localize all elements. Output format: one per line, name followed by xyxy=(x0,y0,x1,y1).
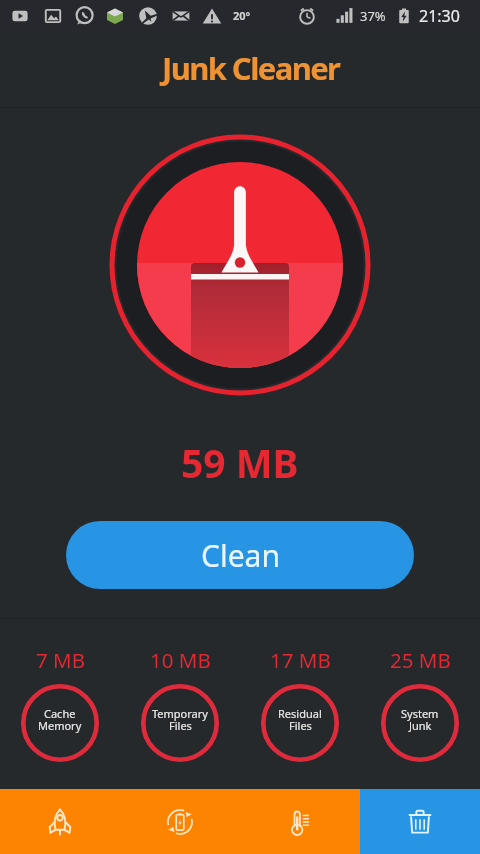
staticText: 37% xyxy=(360,7,386,25)
staticText: Files xyxy=(169,718,192,733)
staticText: Files xyxy=(289,718,312,733)
staticText: 10 MB xyxy=(150,646,211,674)
button[interactable]: 10 MB xyxy=(120,646,240,762)
staticText: Junk Cleaner xyxy=(162,47,340,89)
staticText: 59 MB xyxy=(181,436,299,489)
staticText: 7 MB xyxy=(36,646,85,674)
button[interactable]: CPU cooler xyxy=(240,789,360,854)
button[interactable]: Clean xyxy=(66,521,414,589)
staticText: Temporary xyxy=(152,706,208,721)
button[interactable]: Battery saver xyxy=(120,789,240,854)
staticText: Junk xyxy=(409,718,432,733)
staticText: 21:30 xyxy=(419,5,460,27)
staticText: Clean xyxy=(201,535,280,576)
button[interactable]: 17 MB xyxy=(240,646,360,762)
staticText: 17 MB xyxy=(270,646,331,674)
staticText: 20° xyxy=(233,8,251,23)
staticText: Cache xyxy=(44,706,76,721)
button[interactable]: Boost xyxy=(0,789,120,854)
button[interactable]: Junk cleaner xyxy=(360,789,480,854)
staticText: Residual xyxy=(278,706,322,721)
button[interactable]: 25 MB xyxy=(360,646,480,762)
staticText: 25 MB xyxy=(390,646,451,674)
staticText: System xyxy=(401,706,439,721)
button[interactable]: 7 MB xyxy=(0,646,120,762)
staticText: Memory xyxy=(38,718,82,733)
